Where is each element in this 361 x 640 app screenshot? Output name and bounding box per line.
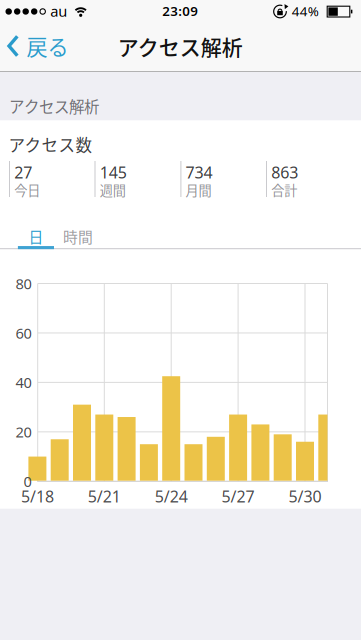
- staticText: 週間: [100, 180, 126, 199]
- staticText: 40: [16, 373, 32, 392]
- button[interactable]: 時間: [54, 223, 102, 249]
- staticText: アクセス解析: [9, 95, 99, 117]
- staticText: 今日: [14, 180, 40, 199]
- staticText: 5/27: [222, 486, 255, 507]
- staticText: アクセス数: [8, 132, 92, 156]
- staticText: 145: [100, 162, 127, 183]
- staticText: アクセス解析: [118, 31, 243, 61]
- staticText: 44%: [292, 2, 319, 20]
- staticText: 戻る: [27, 31, 69, 61]
- staticText: 863: [271, 162, 298, 183]
- staticText: 日: [28, 226, 43, 247]
- staticText: 20: [16, 422, 32, 442]
- staticText: 734: [186, 162, 213, 183]
- staticText: 5/21: [88, 486, 121, 507]
- staticText: au: [50, 1, 67, 21]
- staticText: 0: [24, 472, 32, 491]
- staticText: 時間: [63, 226, 93, 247]
- staticText: 27: [14, 162, 32, 183]
- staticText: 80: [16, 274, 32, 293]
- staticText: 合計: [271, 180, 297, 199]
- staticText: 5/30: [288, 486, 321, 507]
- staticText: 5/18: [21, 486, 54, 507]
- button[interactable]: 日: [18, 223, 54, 249]
- staticText: 5/24: [155, 486, 188, 507]
- button[interactable]: 戻る: [7, 31, 70, 61]
- staticText: 月間: [186, 180, 212, 199]
- staticText: 60: [16, 323, 32, 343]
- staticText: 23:09: [162, 2, 198, 20]
